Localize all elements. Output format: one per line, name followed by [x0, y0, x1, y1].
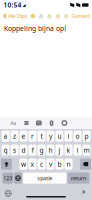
button[interactable]: t	[37, 130, 45, 142]
button[interactable]: k	[64, 144, 72, 156]
staticText: w	[21, 160, 26, 169]
button[interactable]: Alle Clips	[2, 12, 28, 20]
staticText: f	[31, 146, 33, 155]
button[interactable]: Switch keyboard	[2, 187, 14, 200]
staticText: ◢	[21, 3, 25, 7]
staticText: s	[13, 146, 16, 155]
button[interactable]: Format list	[23, 118, 29, 127]
staticText: Aa	[10, 119, 16, 127]
button[interactable]: i	[64, 130, 72, 142]
button[interactable]: f	[28, 144, 36, 156]
button[interactable]: Dictate	[78, 187, 90, 200]
staticText: i	[67, 132, 69, 141]
staticText: Alle Clips	[8, 12, 28, 20]
staticText: a	[3, 132, 7, 141]
button[interactable]: d	[19, 144, 27, 156]
staticText: u	[57, 132, 61, 141]
button[interactable]: g	[37, 144, 45, 156]
button[interactable]: Options	[64, 14, 68, 18]
staticText: l	[76, 146, 78, 155]
button[interactable]: e	[19, 130, 27, 142]
staticText: b	[57, 160, 61, 169]
staticText: q	[3, 146, 7, 155]
staticText: g	[39, 146, 43, 155]
staticText: m	[83, 146, 89, 155]
button[interactable]: Share	[55, 14, 60, 18]
button[interactable]: x	[28, 158, 36, 170]
staticText: spatie	[37, 175, 52, 182]
button[interactable]: b	[55, 158, 63, 170]
staticText: t	[40, 132, 42, 141]
button[interactable]: j	[55, 144, 63, 156]
staticText: y	[49, 132, 52, 141]
button[interactable]: Camera	[61, 118, 68, 127]
staticText: 123	[3, 175, 12, 182]
button[interactable]: Aa	[10, 118, 16, 127]
button[interactable]: w	[19, 158, 27, 170]
button[interactable]: u	[55, 130, 63, 142]
staticText: n	[66, 160, 70, 169]
staticText: Gereed	[71, 12, 89, 20]
button[interactable]: a	[1, 130, 9, 142]
button[interactable]: return	[67, 172, 89, 184]
staticText: r	[31, 132, 34, 141]
button[interactable]: l	[73, 144, 81, 156]
staticText: k	[66, 146, 70, 155]
staticText: Koppeling bijna op	[4, 24, 64, 33]
button[interactable]: Gereed	[71, 12, 89, 20]
button[interactable]: Photos	[36, 118, 42, 127]
button[interactable]: h	[46, 144, 54, 156]
staticText: o	[75, 132, 79, 141]
button[interactable]: n	[64, 158, 72, 170]
button[interactable]: Attach	[48, 118, 55, 127]
staticText: p	[84, 132, 88, 141]
button[interactable]: p	[82, 130, 90, 142]
button[interactable]: s	[10, 144, 18, 156]
button[interactable]: Highlight	[31, 14, 35, 18]
button[interactable]: c	[37, 158, 45, 170]
staticText: c	[40, 160, 43, 169]
button[interactable]: Private	[47, 14, 52, 18]
staticText: e	[21, 132, 25, 141]
button[interactable]: Shift	[1, 158, 12, 170]
staticText: z	[13, 132, 16, 141]
button[interactable]: r	[28, 130, 36, 142]
staticText: h	[48, 146, 52, 155]
staticText: d	[21, 146, 25, 155]
button[interactable]: Emoji keyboard	[14, 172, 22, 184]
staticText: 10:54	[3, 1, 21, 9]
button[interactable]: Lock	[39, 14, 43, 18]
button[interactable]: m	[82, 144, 90, 156]
staticText: x	[30, 160, 34, 169]
button[interactable]: z	[10, 130, 18, 142]
button[interactable]: y	[46, 130, 54, 142]
staticText: j	[58, 146, 60, 155]
button[interactable]: o	[73, 130, 81, 142]
button[interactable]: spatie	[23, 172, 66, 184]
button[interactable]: v	[46, 158, 54, 170]
staticText: v	[49, 160, 52, 169]
staticText: return	[71, 175, 86, 182]
button[interactable]: 123	[2, 172, 13, 184]
button[interactable]: q	[1, 144, 9, 156]
button[interactable]: Delete	[80, 158, 91, 170]
